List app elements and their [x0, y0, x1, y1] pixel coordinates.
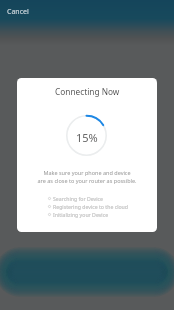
staticText: Initializing your Device: [53, 211, 109, 218]
staticText: 15%: [76, 130, 98, 145]
staticText: Registering device to the cloud: [53, 203, 129, 210]
staticText: Cancel: [7, 7, 29, 17]
staticText: Searching for Device: [53, 195, 103, 202]
button[interactable]: Continue: [0, 244, 174, 298]
staticText: Connecting Now: [55, 86, 120, 97]
button[interactable]: Cancel: [3, 4, 33, 20]
staticText: Make sure your phone and device are as c…: [37, 169, 137, 185]
